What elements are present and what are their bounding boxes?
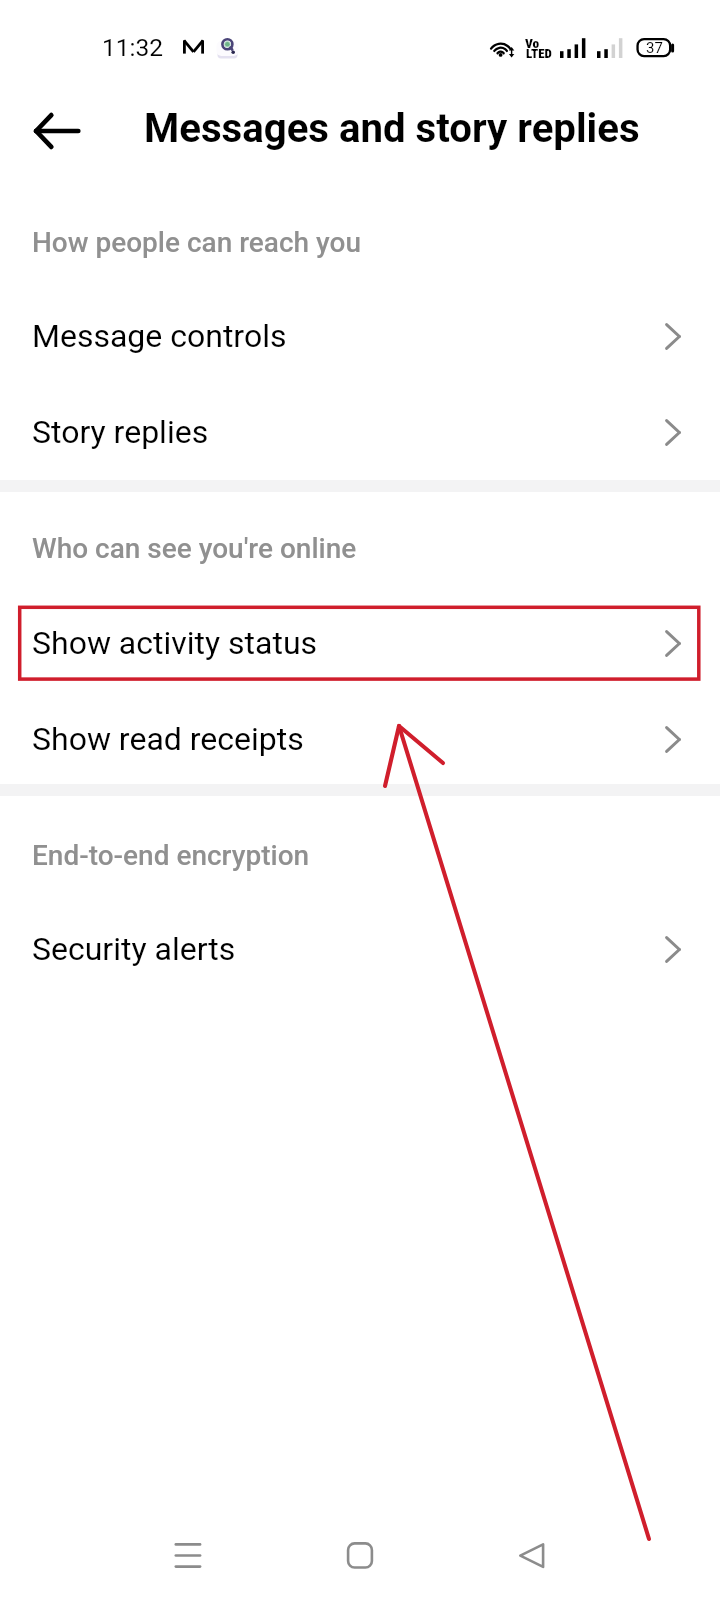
staticText: How people can reach you	[32, 226, 362, 259]
button[interactable]: Security alerts	[0, 901, 720, 997]
button[interactable]: Recent apps	[158, 1526, 218, 1586]
staticText: Vo	[525, 35, 551, 51]
button[interactable]: Home	[330, 1526, 390, 1586]
staticText: 37	[646, 39, 663, 57]
button[interactable]: Message controls	[0, 288, 720, 384]
staticText: Message controls	[32, 317, 287, 355]
staticText: Security alerts	[32, 930, 236, 968]
staticText: Who can see you're online	[32, 532, 357, 565]
button[interactable]: Back	[500, 1526, 560, 1586]
staticText: Story replies	[32, 413, 209, 451]
button[interactable]: Story replies	[0, 384, 720, 480]
staticText: Show read receipts	[32, 720, 304, 758]
staticText: Show activity status	[32, 624, 318, 662]
button[interactable]: Show read receipts	[0, 691, 720, 787]
staticText: End-to-end encryption	[32, 839, 310, 872]
button[interactable]: Show activity status	[0, 595, 720, 691]
staticText: Messages and story replies	[144, 105, 640, 152]
staticText: LTED	[526, 46, 552, 61]
staticText: 11:32	[102, 33, 164, 62]
button[interactable]: Back	[20, 101, 92, 161]
